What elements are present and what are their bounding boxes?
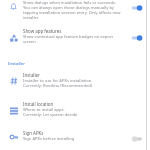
- staticText: Installer: [8, 60, 26, 66]
- staticText: Sign APKs: [23, 130, 44, 136]
- button[interactable]: Toggle show app features: [128, 32, 146, 44]
- staticText: Show contextual app feature badges on ex…: [23, 34, 124, 44]
- staticText: Show app features: [23, 28, 62, 34]
- button[interactable]: Show app features: [0, 28, 150, 44]
- button[interactable]: Show dialogs when installation fails or …: [0, 0, 150, 20]
- button[interactable]: Install location: [0, 101, 150, 117]
- button[interactable]: Toggle sign APKs: [128, 133, 146, 145]
- staticText: Where to install apps. Currently: Let sy…: [23, 107, 78, 117]
- button[interactable]: Sign APKs: [0, 130, 150, 145]
- staticText: Show dialogs when installation fails or …: [23, 0, 124, 20]
- staticText: Install location: [23, 101, 54, 107]
- staticText: Sign APKs before installing: [23, 136, 75, 142]
- staticText: Installer to use for APKs installation. …: [23, 78, 93, 88]
- button[interactable]: Installer: [0, 72, 150, 88]
- button[interactable]: Toggle show dialogs: [128, 2, 146, 14]
- staticText: Installer: [23, 72, 40, 78]
